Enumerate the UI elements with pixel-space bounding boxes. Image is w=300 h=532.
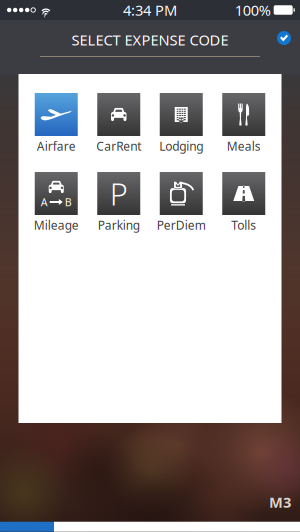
staticText: Mileage [34, 217, 79, 233]
button[interactable]: Tolls [222, 172, 265, 231]
staticText: A [41, 195, 48, 209]
staticText: SELECT EXPENSE CODE [71, 30, 228, 49]
staticText: Parking [98, 217, 140, 233]
staticText: PerDiem [157, 217, 206, 233]
button[interactable]: Meals [222, 93, 265, 152]
staticText: P [110, 173, 128, 214]
staticText: Airfare [37, 138, 76, 154]
staticText: 100% [235, 0, 271, 20]
button[interactable]: Airfare [35, 93, 78, 152]
button[interactable]: Lodging [160, 93, 203, 152]
button[interactable]: P [97, 172, 140, 231]
staticText: M3 [269, 492, 291, 512]
button[interactable]: CarRent [97, 93, 140, 152]
button[interactable]: A [35, 172, 78, 231]
button[interactable]: Confirm selection [277, 20, 300, 45]
staticText: Meals [227, 138, 261, 154]
staticText: Lodging [159, 138, 203, 154]
button[interactable]: PerDiem [160, 172, 203, 231]
staticText: CarRent [96, 138, 141, 154]
staticText: Tolls [231, 217, 256, 233]
staticText: 4:34 PM [123, 0, 177, 20]
staticText: B [65, 195, 72, 209]
